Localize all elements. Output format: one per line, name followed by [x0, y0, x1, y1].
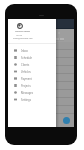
staticText: Material Design — [15, 30, 31, 33]
staticText: Projects — [21, 84, 31, 88]
button[interactable]: Vehicles — [8, 68, 56, 75]
staticText: Vehicles — [21, 70, 31, 74]
staticText: Schedule — [21, 56, 33, 60]
button[interactable]: Payment — [8, 75, 56, 82]
staticText: Inbox — [21, 49, 28, 53]
button[interactable]: Inbox — [8, 47, 56, 54]
button[interactable]: Add — [63, 117, 70, 124]
staticText: Clients — [21, 63, 30, 67]
staticText: Messages — [21, 91, 34, 95]
button[interactable]: Messages — [8, 89, 56, 96]
button[interactable]: Settings — [8, 96, 56, 103]
staticText: Settings — [21, 98, 31, 102]
staticText: UX/UI — [16, 34, 23, 37]
button[interactable]: Clients — [8, 61, 56, 68]
staticText: name@example.com — [13, 37, 33, 40]
button[interactable]: Schedule — [8, 54, 56, 61]
staticText: Payment — [21, 77, 32, 81]
button[interactable]: Projects — [8, 82, 56, 89]
